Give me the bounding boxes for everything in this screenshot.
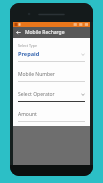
button[interactable]: Prepaid	[18, 50, 85, 58]
staticText: Select Operator	[18, 91, 55, 98]
staticText: Prepaid	[18, 50, 40, 58]
button[interactable]: Select Operator	[18, 91, 85, 98]
button[interactable]: Amount	[18, 111, 85, 118]
button[interactable]: Mobile Number	[18, 71, 85, 78]
staticText: Mobile Number	[18, 71, 55, 78]
button[interactable]: Back	[13, 27, 24, 38]
staticText: Amount	[18, 111, 37, 118]
staticText: Select Type	[18, 43, 37, 48]
staticText: Mobile Recharge	[25, 29, 65, 36]
